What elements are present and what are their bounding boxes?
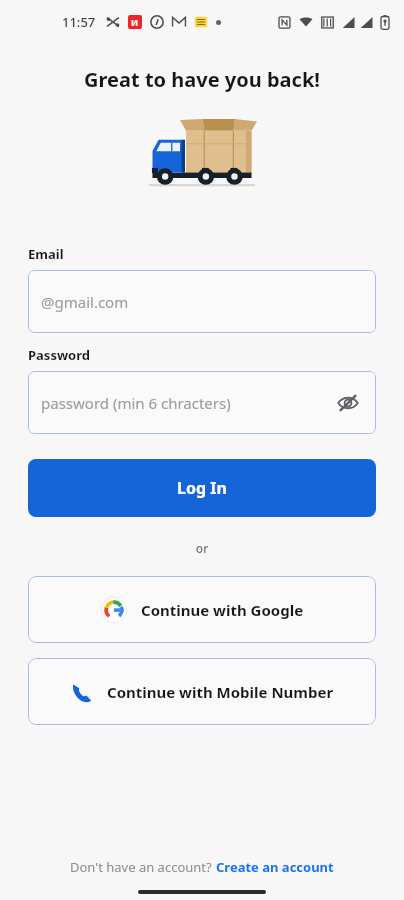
button[interactable]: Continue with Google [28,576,376,643]
staticText: 11:57 [62,13,96,31]
staticText: password (min 6 chracters) [41,393,333,413]
staticText: Create an account [216,858,334,876]
button[interactable]: Continue with Mobile Number [28,658,376,725]
button[interactable]: @gmail.com [28,270,376,333]
button[interactable]: Show password [333,388,363,418]
staticText: Continue with Mobile Number [107,682,334,702]
staticText: @gmail.com [41,292,363,312]
staticText: Great to have you back! [0,66,404,93]
staticText: Email [28,245,64,263]
staticText: Password [28,346,90,364]
button[interactable]: Create an account [216,858,334,876]
button[interactable]: password (min 6 chracters) [28,371,376,434]
staticText: Continue with Google [141,600,304,620]
staticText: И [131,16,139,28]
staticText: or [0,540,404,556]
button[interactable]: Log In [28,459,376,517]
staticText: Don't have an account? [70,858,216,876]
staticText: Log In [177,477,227,499]
